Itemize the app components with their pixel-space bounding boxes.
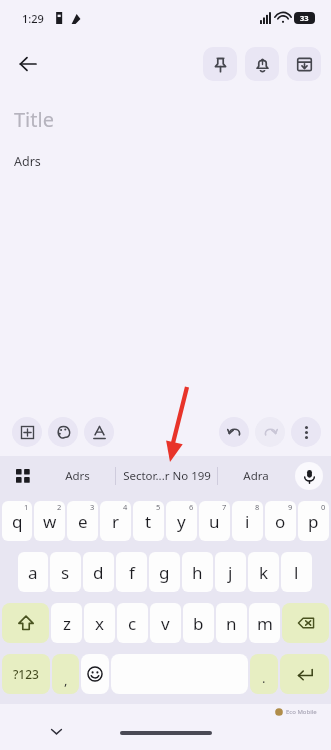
button[interactable]: g (149, 552, 180, 592)
staticText: e (78, 510, 88, 533)
button[interactable]: Toolbar (8, 461, 38, 491)
button[interactable]: , (52, 654, 79, 694)
button[interactable]: Archive (287, 47, 321, 81)
staticText: y (177, 510, 186, 533)
staticText: h (192, 561, 203, 584)
button[interactable]: i (232, 501, 263, 541)
button[interactable]: n (216, 603, 247, 643)
button[interactable]: Enter (280, 654, 329, 694)
staticText: c (128, 612, 137, 635)
staticText: g (159, 561, 170, 584)
button[interactable]: z (51, 603, 82, 643)
staticText: Title (14, 106, 54, 133)
button[interactable]: b (183, 603, 214, 643)
staticText: . (262, 669, 266, 687)
staticText: 4 (123, 502, 128, 512)
staticText: d (93, 561, 104, 584)
button[interactable]: More options (291, 417, 321, 447)
staticText: 5 (156, 502, 161, 512)
button[interactable]: Redo (255, 417, 285, 447)
button[interactable]: . (250, 654, 278, 694)
button[interactable]: y (166, 501, 197, 541)
staticText: 1 (24, 502, 29, 512)
staticText: r (112, 510, 120, 533)
staticText: 9 (288, 502, 293, 512)
staticText: 6 (189, 502, 194, 512)
staticText: i (245, 510, 250, 533)
button[interactable]: m (249, 603, 280, 643)
staticText: m (257, 612, 273, 635)
staticText: u (209, 510, 220, 533)
staticText: Sector...r No 199 (123, 468, 211, 484)
staticText: z (63, 612, 71, 635)
staticText: k (259, 561, 269, 584)
staticText: w (43, 510, 57, 533)
button[interactable]: e (67, 501, 98, 541)
button[interactable]: Reminder (245, 47, 279, 81)
button[interactable]: Add (12, 417, 42, 447)
button[interactable]: Back (8, 44, 48, 84)
button[interactable]: j (215, 552, 246, 592)
staticText: o (275, 510, 286, 533)
staticText: 2 (57, 502, 62, 512)
button[interactable]: Hide keyboard (43, 718, 69, 744)
button[interactable]: ?123 (2, 654, 50, 694)
button[interactable]: t (133, 501, 164, 541)
button[interactable]: Theme (48, 417, 78, 447)
button[interactable]: w (34, 501, 65, 541)
button[interactable]: Backspace (282, 603, 329, 643)
button[interactable]: Voice input (295, 462, 323, 490)
button[interactable]: h (182, 552, 213, 592)
staticText: n (226, 612, 237, 635)
button[interactable]: Undo (219, 417, 249, 447)
button[interactable]: c (117, 603, 148, 643)
button[interactable]: Title (14, 106, 317, 133)
staticText: q (12, 510, 23, 533)
button[interactable]: Adrs (40, 461, 115, 491)
button[interactable]: r (100, 501, 131, 541)
button[interactable]: Pin (203, 47, 237, 81)
button[interactable]: p (298, 501, 329, 541)
staticText: a (28, 561, 38, 584)
button[interactable]: x (84, 603, 115, 643)
staticText: 0 (321, 502, 326, 512)
staticText: 8 (255, 502, 260, 512)
button[interactable]: a (18, 552, 48, 592)
button[interactable]: Sector...r No 199 (116, 461, 217, 491)
button[interactable]: s (50, 552, 81, 592)
staticText: ?123 (13, 666, 39, 682)
button[interactable]: o (265, 501, 296, 541)
button[interactable]: Emoji (81, 654, 109, 694)
staticText: f (129, 561, 135, 584)
staticText: 1:29 (22, 11, 44, 26)
button[interactable]: u (199, 501, 230, 541)
staticText: Eco Mobile (286, 708, 317, 716)
button[interactable]: Adra (218, 461, 293, 491)
staticText: t (145, 510, 152, 533)
staticText: Adrs (65, 468, 90, 484)
button[interactable]: Adrs (14, 153, 317, 170)
button[interactable]: k (248, 552, 279, 592)
staticText: Adrs (14, 153, 41, 170)
staticText: b (193, 612, 204, 635)
staticText: 3 (90, 502, 95, 512)
staticText: v (161, 612, 170, 635)
button[interactable]: d (83, 552, 114, 592)
staticText: 7 (222, 502, 227, 512)
staticText: j (228, 561, 233, 584)
staticText: , (64, 671, 68, 689)
button[interactable]: Shift (2, 603, 49, 643)
staticText: p (308, 510, 319, 533)
staticText: l (294, 561, 299, 584)
button[interactable]: v (150, 603, 181, 643)
staticText: s (61, 561, 70, 584)
staticText: x (95, 612, 104, 635)
staticText: 33 (300, 13, 309, 23)
button[interactable]: Format text (84, 417, 114, 447)
button[interactable]: l (281, 552, 312, 592)
button[interactable]: q (2, 501, 32, 541)
staticText: Adra (243, 468, 269, 484)
button[interactable]: f (116, 552, 147, 592)
